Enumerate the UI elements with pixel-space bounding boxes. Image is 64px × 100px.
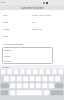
button[interactable]: Show xyxy=(0,25,64,32)
staticText: media 24 xyxy=(32,27,43,30)
staticText: 9:30 xyxy=(1,1,5,4)
staticText: cell xyxy=(32,20,36,23)
staticText: Choose language xyxy=(3,42,23,45)
staticText: Text xyxy=(3,20,8,23)
staticText: unit xyxy=(3,13,8,16)
staticText: english xyxy=(4,49,12,52)
staticText: customer location xyxy=(21,6,44,10)
button[interactable]: english xyxy=(2,47,53,53)
staticText: suggest xyxy=(2,66,10,69)
button[interactable]: unit xyxy=(0,11,64,18)
staticText: Show xyxy=(3,27,10,30)
button[interactable]: russian xyxy=(2,59,53,64)
button[interactable]: customer location xyxy=(0,5,64,10)
button[interactable]: french xyxy=(2,53,53,59)
staticText: russian xyxy=(4,60,12,63)
staticText: Text xyxy=(3,34,8,37)
button[interactable]: Text xyxy=(0,18,64,25)
button[interactable]: Text xyxy=(0,32,64,39)
staticText: Enter your name xyxy=(32,13,51,16)
staticText: french xyxy=(4,55,11,58)
